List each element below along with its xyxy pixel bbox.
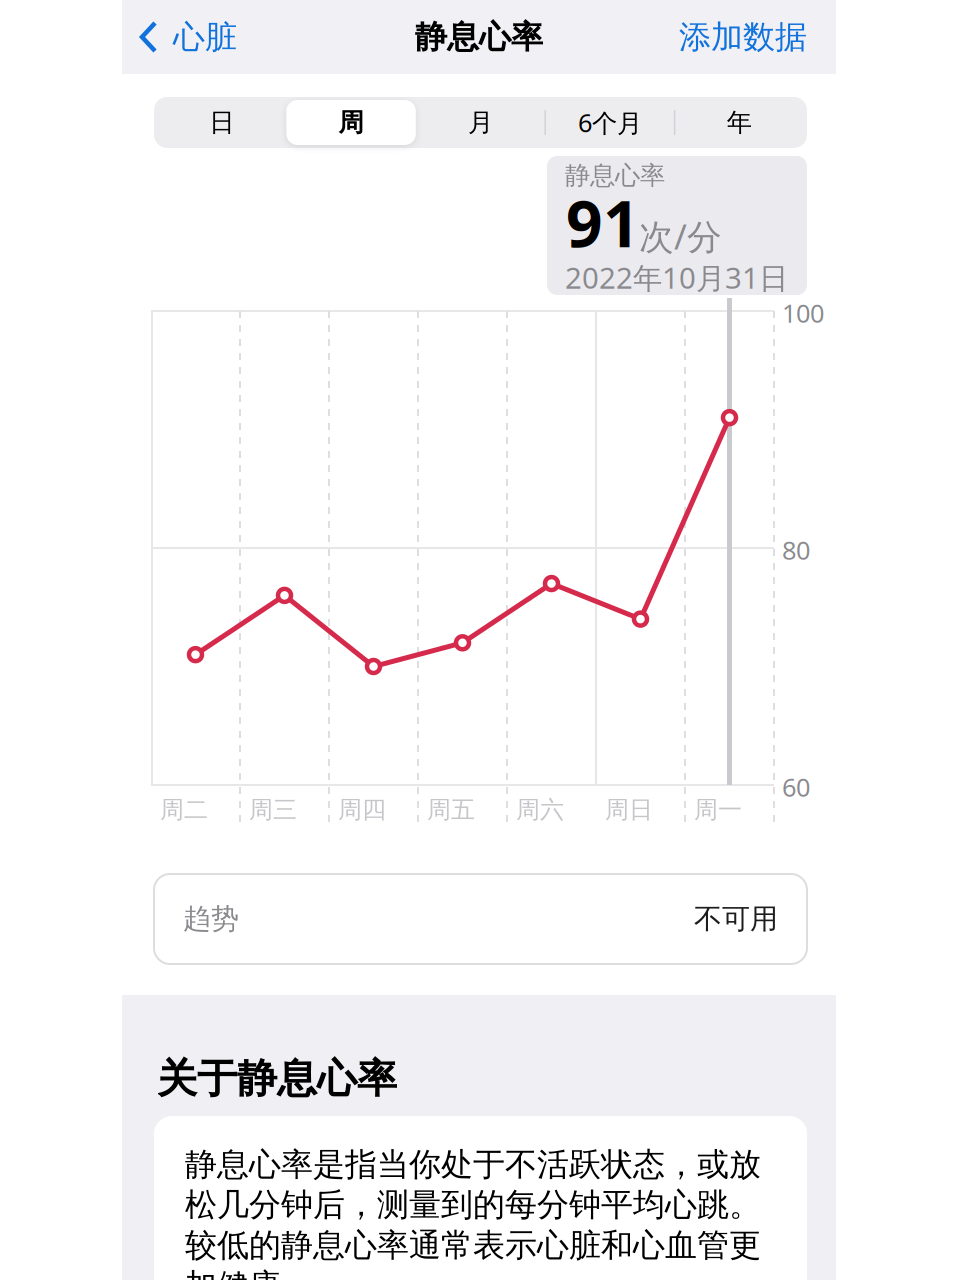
staticText: 日 — [209, 107, 234, 138]
staticText: 静息心率 — [415, 17, 543, 57]
staticText: 周二 — [160, 795, 208, 824]
staticText: 周一 — [694, 795, 742, 824]
staticText: 周五 — [427, 795, 475, 824]
staticText: 80 — [782, 533, 810, 567]
staticText: 静息心率是指当你处于不活跃状态，或放松几分钟后，测量到的每分钟平均心跳。较低的静… — [185, 1145, 761, 1280]
staticText: 周 — [339, 107, 364, 138]
staticText: 周三 — [249, 795, 297, 824]
staticText: 100 — [782, 296, 824, 330]
staticText: 周四 — [338, 795, 386, 824]
staticText: 91 — [566, 180, 640, 265]
button[interactable]: 添加数据 — [637, 0, 807, 74]
staticText: 不可用 — [694, 902, 778, 936]
button[interactable]: 趋势 — [154, 874, 807, 964]
button[interactable]: 月 — [416, 100, 545, 145]
staticText: 次/分 — [639, 213, 722, 259]
button[interactable]: 年 — [675, 100, 804, 145]
staticText: 月 — [468, 107, 493, 138]
staticText: 心脏 — [173, 17, 237, 57]
staticText: 年 — [727, 107, 752, 138]
staticText: 周日 — [605, 795, 653, 824]
staticText: 静息心率 — [565, 160, 665, 191]
staticText: 添加数据 — [679, 17, 807, 57]
button[interactable]: 心脏 — [139, 0, 274, 74]
staticText: 60 — [782, 770, 810, 804]
button[interactable]: 日 — [157, 100, 286, 145]
button[interactable]: 6个月 — [545, 100, 675, 145]
staticText: 趋势 — [183, 902, 239, 936]
staticText: 2022年10月31日 — [565, 258, 788, 297]
staticText: 周六 — [516, 795, 564, 824]
button[interactable]: 周 — [286, 100, 416, 145]
staticText: 关于静息心率 — [157, 1054, 397, 1103]
staticText: 6个月 — [578, 106, 642, 139]
